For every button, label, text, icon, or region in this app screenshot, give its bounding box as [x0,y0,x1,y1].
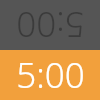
button[interactable]: Player one timer, 5 minutes, paused [0,0,100,50]
button[interactable]: Player two timer, 5 minutes, running [0,50,100,100]
staticText: 5:00 [16,51,85,99]
staticText: 5:00 [16,1,85,49]
